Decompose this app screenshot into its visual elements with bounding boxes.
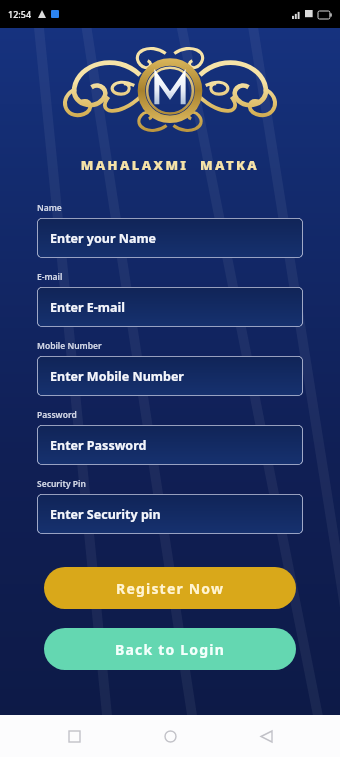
button[interactable]: Enter Security pin: [37, 494, 303, 534]
staticText: Enter your Name: [50, 230, 157, 247]
staticText: 12:54: [8, 8, 32, 20]
button[interactable]: Back to Login: [44, 628, 296, 670]
staticText: Register Now: [116, 579, 225, 598]
staticText: MAHALAXMI MATKA: [0, 156, 340, 174]
button[interactable]: Enter Password: [37, 425, 303, 465]
staticText: Enter Security pin: [50, 506, 161, 523]
staticText: Back to Login: [115, 640, 226, 659]
staticText: Name: [37, 202, 62, 214]
staticText: Enter E-mail: [50, 299, 125, 316]
staticText: Enter Mobile Number: [50, 368, 184, 385]
button[interactable]: Enter your Name: [37, 218, 303, 258]
staticText: E-mail: [37, 271, 63, 283]
button[interactable]: Enter E-mail: [37, 287, 303, 327]
button[interactable]: Enter Mobile Number: [37, 356, 303, 396]
staticText: Security Pin: [37, 478, 86, 490]
button[interactable]: Register Now: [44, 567, 296, 609]
button[interactable]: Recents: [58, 720, 90, 752]
staticText: Enter Password: [50, 437, 147, 454]
staticText: Mobile Number: [37, 340, 102, 352]
button[interactable]: Home: [154, 720, 186, 752]
staticText: Password: [37, 409, 77, 421]
button[interactable]: Back: [250, 720, 282, 752]
